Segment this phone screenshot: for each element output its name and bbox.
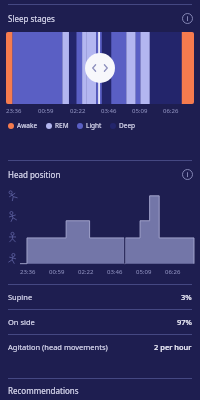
staticText: 2 per hour (154, 342, 192, 352)
button[interactable]: Info about Head position (180, 167, 194, 181)
staticText: 06:26 (163, 107, 194, 115)
staticText: 00:59 (38, 107, 70, 115)
staticText: Awake (17, 121, 38, 130)
staticText: Supine (8, 292, 33, 302)
button[interactable]: Agitation (head movements) (0, 335, 200, 359)
staticText: 00:59 (49, 268, 78, 276)
button[interactable]: Recommendations (0, 379, 200, 400)
staticText: Deep (119, 121, 136, 130)
staticText: 06:26 (165, 268, 194, 276)
staticText: 05:09 (136, 268, 165, 276)
button[interactable]: Scrub sleep timeline (85, 53, 115, 83)
staticText: 03:46 (107, 268, 136, 276)
staticText: Sleep stages (8, 13, 55, 24)
staticText: Agitation (head movements) (8, 342, 108, 352)
staticText: On side (8, 317, 35, 327)
button[interactable] (20, 188, 194, 266)
staticText: 03:46 (101, 107, 132, 115)
staticText: 02:22 (78, 268, 107, 276)
staticText: Recommendations (8, 385, 79, 396)
staticText: 97% (177, 317, 192, 327)
button[interactable]: Info about Sleep stages (180, 11, 194, 25)
staticText: 23:36 (20, 268, 49, 276)
staticText: 3% (181, 292, 192, 302)
button[interactable]: Scrub sleep timeline (6, 32, 194, 104)
staticText: Head position (8, 169, 61, 180)
staticText: 23:36 (6, 107, 38, 115)
button[interactable]: Supine (0, 285, 200, 309)
button[interactable]: On side (0, 310, 200, 334)
staticText: Light (86, 121, 102, 130)
staticText: 05:09 (132, 107, 163, 115)
staticText: REM (55, 121, 69, 130)
staticText: 02:22 (70, 107, 101, 115)
